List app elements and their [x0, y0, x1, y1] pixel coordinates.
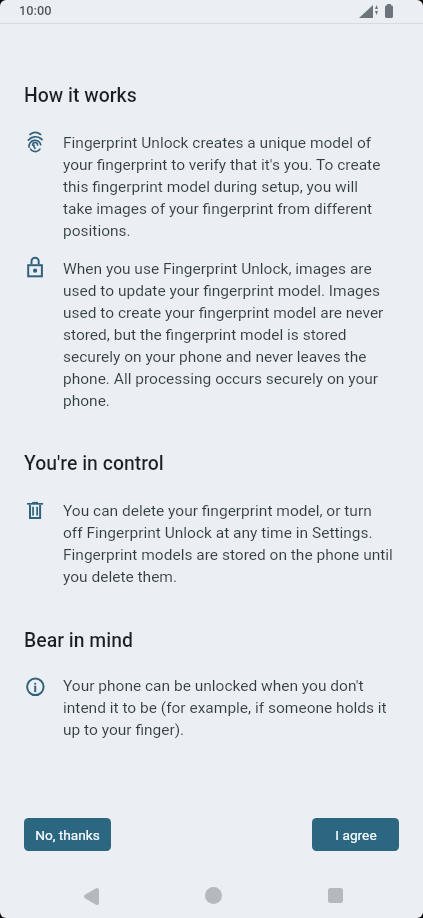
staticText: You're in control — [24, 452, 164, 475]
button[interactable]: Home — [197, 879, 230, 912]
staticText: How it works — [24, 84, 137, 107]
other: Information — [23, 673, 47, 697]
staticText: Your phone can be unlocked when you don'… — [63, 677, 387, 739]
staticText: 10:00 — [19, 3, 52, 18]
staticText: You can delete your fingerprint model, o… — [63, 502, 393, 586]
button[interactable]: I agree — [312, 818, 399, 851]
other: Fingerprint — [23, 130, 47, 154]
staticText: Bear in mind — [24, 629, 133, 652]
staticText: Fingerprint Unlock creates a unique mode… — [63, 134, 381, 240]
button[interactable]: Recent apps — [319, 879, 352, 912]
button[interactable]: Back — [77, 882, 110, 915]
staticText: No, thanks — [35, 827, 100, 843]
other: Lock — [23, 256, 47, 280]
staticText: When you use Fingerprint Unlock, images … — [63, 260, 384, 410]
other: Delete — [23, 498, 47, 522]
button[interactable]: No, thanks — [24, 818, 111, 851]
staticText: I agree — [335, 827, 377, 843]
